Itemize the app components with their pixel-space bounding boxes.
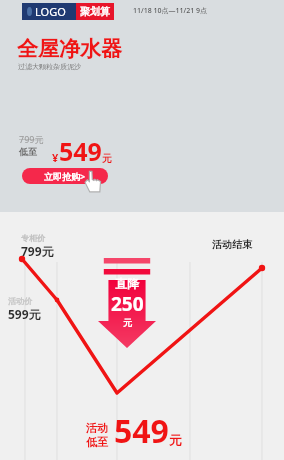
staticText: LOGO [35,4,66,19]
staticText: 250 [111,291,144,317]
staticText: 799元 [21,243,54,259]
staticText: 低至 [86,435,108,449]
button[interactable]: 立即抢购> [22,168,108,184]
staticText: 全屋净水器 [17,36,122,62]
staticText: 599元 [8,306,41,322]
button[interactable]: LOGO [22,3,114,20]
staticText: 549 [114,409,169,453]
staticText: 元 [102,152,112,165]
staticText: 元 [169,432,182,448]
staticText: 活动 [86,421,108,435]
staticText: 元 [123,317,132,328]
staticText: 过滤大颗粒杂质泥沙 [18,62,81,71]
staticText: 直降 [115,276,139,291]
staticText: 799元 [19,133,44,145]
staticText: 活动结束 [212,238,252,251]
staticText: 549 [59,134,102,168]
staticText: 低至 [19,146,37,157]
staticText: ¥ [52,150,59,165]
staticText: 聚划算 [80,5,110,18]
other: Tap [84,171,102,193]
staticText: 11/18 10点—11/21 9点 [133,6,208,16]
staticText: 立即抢购> [44,170,86,182]
staticText: 活动价 [8,296,32,306]
staticText: 专柜价 [21,233,45,243]
